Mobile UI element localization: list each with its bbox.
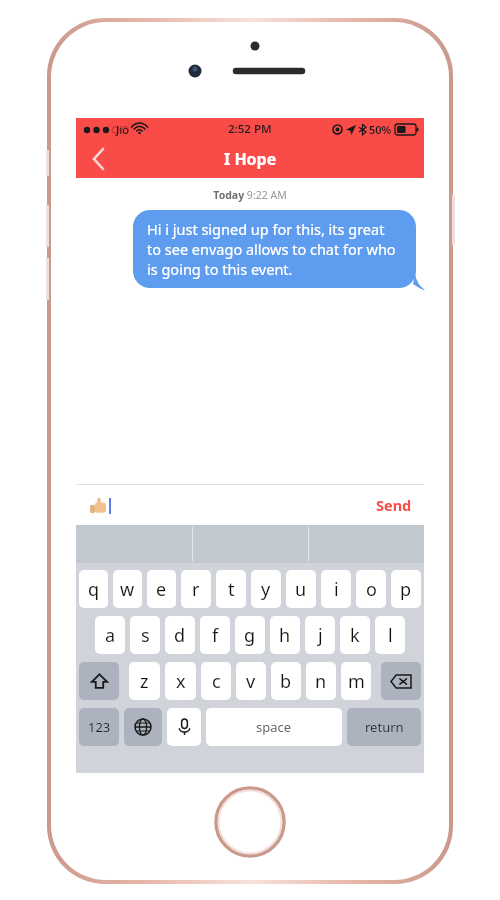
staticText: u [295,577,307,602]
staticText: i [334,577,339,602]
staticText: c [212,669,221,694]
button[interactable]: u [286,570,316,608]
staticText: I Hope [224,148,277,170]
staticText: t [228,577,235,602]
staticText: n [315,669,327,694]
button[interactable]: w [113,570,142,608]
button[interactable]: 123 [79,708,119,746]
staticText: r [192,577,200,602]
button[interactable]: s [130,616,160,654]
button[interactable]: Send [364,487,424,523]
staticText: v [246,669,256,694]
button[interactable]: Back [76,140,120,178]
staticText: Hi i just signed up for this, its great … [147,219,402,279]
staticText: 123 [88,718,111,736]
button[interactable]: r [181,570,211,608]
staticText: h [279,623,291,648]
staticText: space [256,718,292,736]
button[interactable]: e [147,570,176,608]
button[interactable]: t [216,570,246,608]
staticText: y [261,577,271,602]
staticText: z [140,669,149,694]
staticText: p [400,577,412,602]
staticText: return [365,718,404,736]
button[interactable]: y [251,570,281,608]
staticText: l [388,623,393,648]
button[interactable]: p [391,570,421,608]
button[interactable]: f [200,616,230,654]
staticText: b [280,669,292,694]
button[interactable]: space [206,708,342,746]
button[interactable]: x [165,662,196,700]
button[interactable]: g [235,616,265,654]
button[interactable]: c [201,662,231,700]
staticText: x [176,669,186,694]
button[interactable]: i [321,570,351,608]
staticText: o [366,577,377,602]
staticText: Jio [116,122,129,137]
button[interactable]: j [305,616,335,654]
staticText: 50% [369,122,392,137]
staticText: Send [376,495,412,515]
button[interactable]: h [270,616,300,654]
button[interactable]: n [306,662,336,700]
button[interactable]: o [356,570,386,608]
button[interactable]: v [236,662,266,700]
button[interactable]: Dictation [167,708,201,746]
staticText: s [141,623,150,648]
staticText: Today 9:22 AM [76,188,424,202]
button[interactable] [79,662,119,700]
staticText: f [212,623,219,648]
button[interactable]: l [375,616,405,654]
staticText: e [156,577,167,602]
staticText: m [348,669,365,694]
button[interactable]: m [341,662,371,700]
button[interactable]: q [79,570,108,608]
staticText: k [350,623,360,648]
button[interactable]: Backspace [381,662,421,700]
button[interactable]: return [347,708,421,746]
staticText: a [105,623,116,648]
button[interactable]: d [165,616,195,654]
button[interactable]: a [95,616,125,654]
staticText: j [318,623,323,648]
button[interactable]: Hi i just signed up for this, its great … [133,210,416,288]
staticText: q [88,577,100,602]
staticText: 2:52 PM [228,121,272,137]
button[interactable]: k [340,616,370,654]
staticText: w [120,577,135,602]
button[interactable]: b [271,662,301,700]
button[interactable]: z [129,662,160,700]
button[interactable]: Emoji keyboard [124,708,162,746]
staticText: d [174,623,186,648]
staticText: g [244,623,256,648]
